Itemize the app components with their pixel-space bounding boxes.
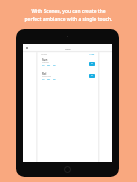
staticText: Living room [42,75,51,77]
staticText: Custom [41,53,48,55]
staticText: With Scenes, you can create the perfect … [0,8,137,22]
staticText: On [91,75,93,77]
staticText: On [91,63,93,65]
staticText: Scenes [65,48,71,50]
button[interactable]: Sun [42,58,88,67]
staticText: Rel [42,72,47,76]
button[interactable]: On [42,64,45,66]
button[interactable]: Edit [47,64,51,66]
staticText: 3 devices [42,61,49,63]
button[interactable]: Del [53,64,56,66]
button[interactable]: Activate scene [89,74,95,78]
button[interactable]: + New [89,53,95,55]
button[interactable]: Rel [42,72,88,81]
button[interactable]: Edit [47,78,51,80]
button[interactable]: Del [53,78,56,80]
button[interactable]: On [42,78,45,80]
button[interactable]: Activate scene [89,62,95,66]
staticText: Sun [42,58,48,62]
